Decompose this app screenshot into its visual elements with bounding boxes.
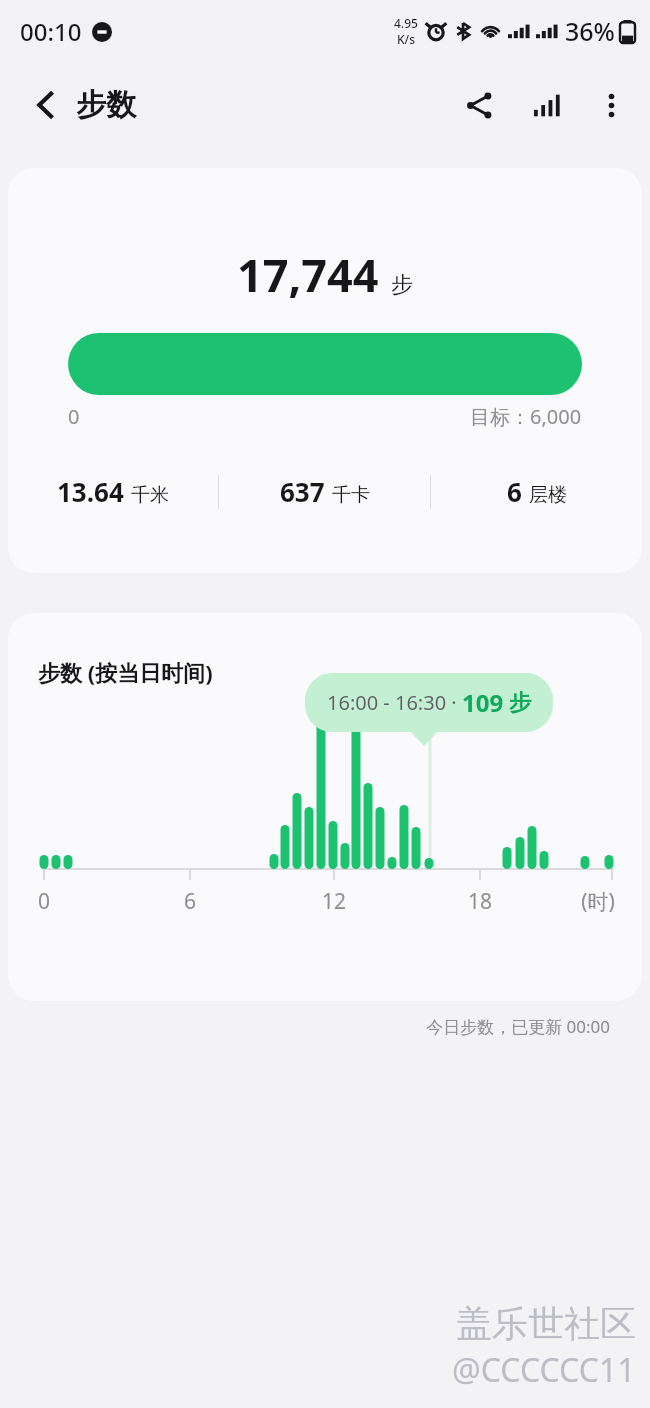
staticText: 637 [280,474,325,509]
staticText: 36% [565,14,615,48]
button[interactable]: 步数 (按当日时间) [8,613,642,1001]
staticText: 0 [68,403,80,430]
staticText: (时) [572,887,624,916]
staticText: 今日步数，已更新 00:00 [0,1015,610,1038]
button[interactable]: 更多选项 [584,78,638,132]
staticText: 6 [507,474,522,509]
staticText: 步 [391,271,413,299]
staticText: 109 [462,686,504,719]
staticText: 千米 [131,483,169,507]
staticText: 18 [454,887,506,916]
staticText: 17,744 [237,244,379,305]
staticText: 目标：6,000 [470,403,582,430]
staticText: 步数 [76,86,136,124]
button[interactable]: 17,744 [8,168,642,573]
staticText: 层楼 [529,483,567,507]
staticText: 千卡 [332,483,370,507]
button[interactable]: 分享 [452,78,506,132]
staticText: 步 [509,689,531,717]
staticText: 4.95 [394,15,418,31]
staticText: 0 [18,887,70,916]
staticText: @CCCCCC11 [452,1348,636,1392]
staticText: 16:00 - 16:30 · [327,689,462,716]
staticText: 00:10 [20,15,82,48]
button[interactable]: 返回 [20,79,72,131]
staticText: 步数 (按当日时间) [38,657,213,687]
button[interactable]: 图表 [520,78,574,132]
staticText: K/s [397,31,416,47]
staticText: 13.64 [57,474,124,509]
staticText: 盖乐世社区 [456,1301,636,1346]
button[interactable]: 16:00 - 16:30 · [305,673,553,732]
staticText: 12 [308,887,360,916]
staticText: 6 [164,887,216,916]
